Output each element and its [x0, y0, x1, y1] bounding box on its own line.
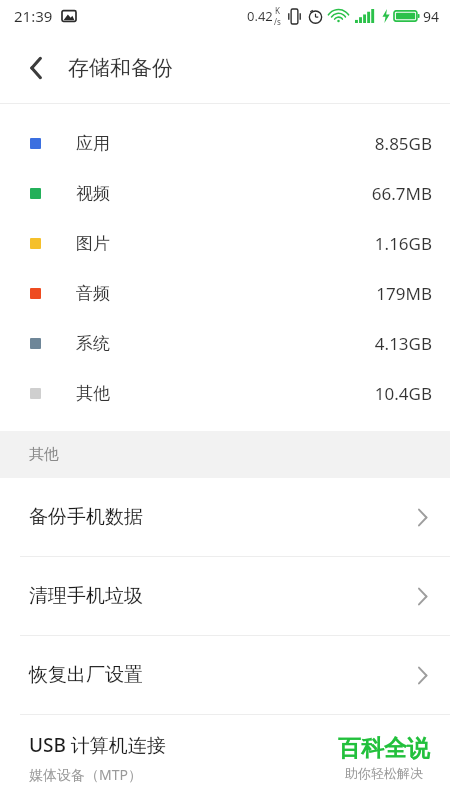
button[interactable]: Back — [14, 46, 58, 90]
staticText: USB 计算机连接 — [29, 732, 166, 758]
staticText: 1.16GB — [374, 232, 432, 255]
staticText: 10.4GB — [374, 382, 432, 405]
button[interactable]: 图片 — [0, 218, 450, 268]
staticText: 应用 — [76, 133, 110, 154]
staticText: 179MB — [376, 282, 432, 305]
button[interactable]: 恢复出厂设置 — [0, 636, 450, 714]
staticText: 助你轻松解决 — [345, 765, 423, 781]
staticText: 4.13GB — [374, 332, 432, 355]
staticText: 视频 — [76, 183, 110, 204]
staticText: 66.7MB — [371, 182, 432, 205]
button[interactable]: 备份手机数据 — [0, 478, 450, 556]
staticText: 百科全说 — [338, 734, 430, 763]
staticText: 图片 — [76, 233, 110, 254]
button[interactable]: 清理手机垃圾 — [0, 557, 450, 635]
staticText: K — [275, 5, 280, 16]
button[interactable]: 视频 — [0, 168, 450, 218]
staticText: 媒体设备（MTP） — [29, 765, 142, 784]
staticText: 音频 — [76, 283, 110, 304]
staticText: 存储和备份 — [68, 55, 173, 81]
staticText: 8.85GB — [374, 132, 432, 155]
staticText: 其他 — [76, 383, 110, 404]
staticText: 94 — [423, 7, 440, 26]
button[interactable]: 系统 — [0, 318, 450, 368]
button[interactable]: 其他 — [0, 368, 450, 418]
staticText: 0.42 — [247, 7, 273, 25]
staticText: 系统 — [76, 333, 110, 354]
staticText: 恢复出厂设置 — [29, 663, 143, 687]
button[interactable]: USB 计算机连接 — [0, 715, 450, 800]
staticText: 21:39 — [14, 6, 53, 26]
staticText: 其他 — [29, 445, 59, 464]
staticText: 备份手机数据 — [29, 505, 143, 529]
button[interactable]: 应用 — [0, 118, 450, 168]
staticText: /s — [274, 16, 281, 27]
staticText: 清理手机垃圾 — [29, 584, 143, 608]
button[interactable]: 音频 — [0, 268, 450, 318]
